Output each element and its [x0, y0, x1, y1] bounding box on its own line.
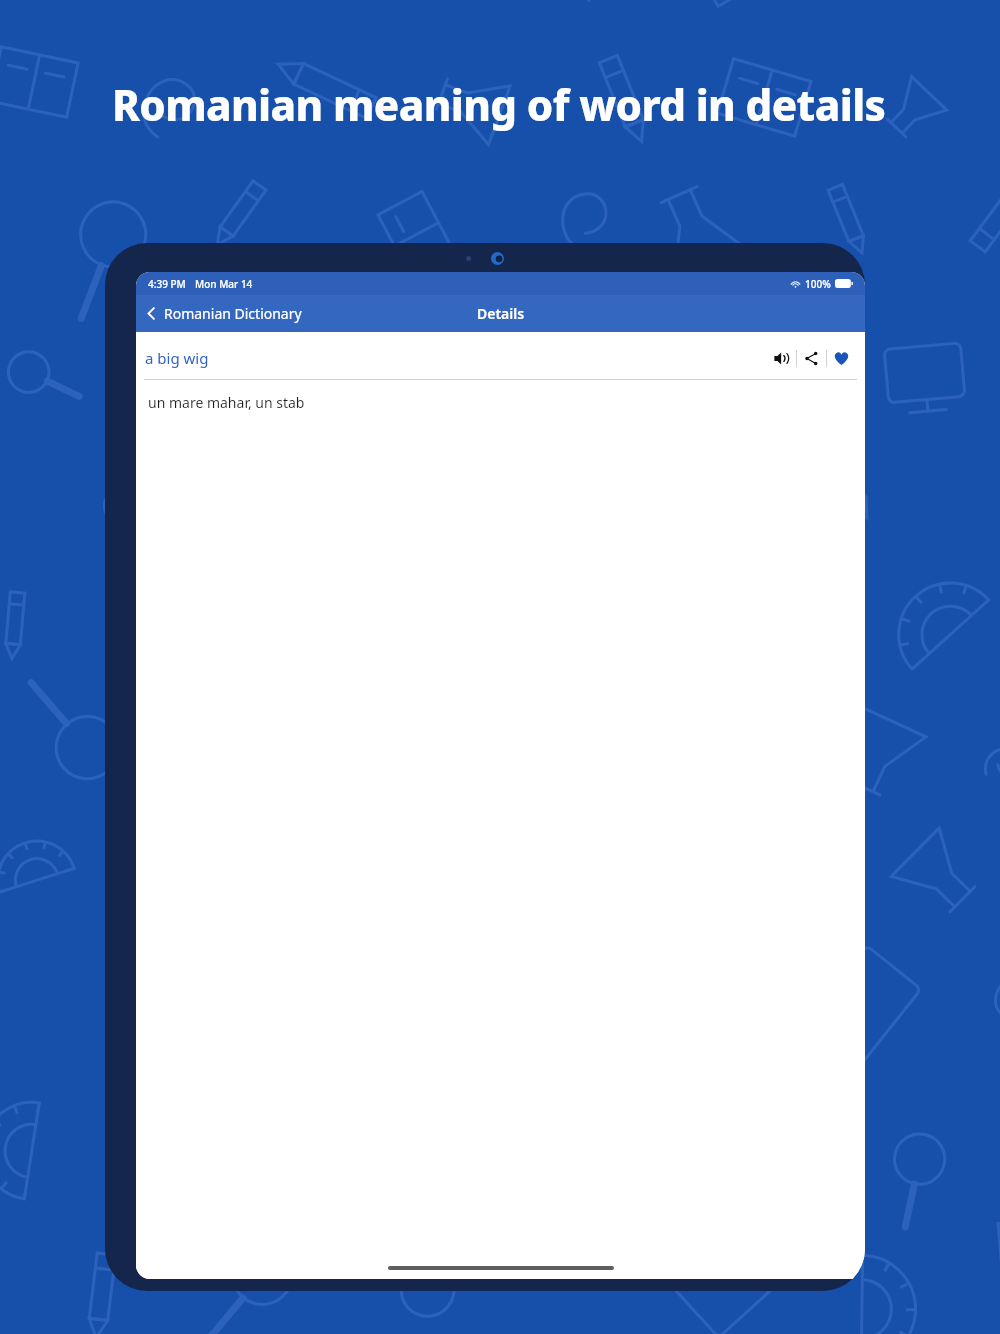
staticText: un mare mahar, un stab: [148, 393, 305, 412]
button[interactable]: Romanian Dictionary: [136, 299, 312, 328]
button[interactable]: Share: [797, 347, 826, 370]
staticText: 100%: [805, 277, 831, 291]
staticText: Romanian Dictionary: [164, 304, 302, 323]
button[interactable]: a big wig: [145, 344, 209, 372]
staticText: Details: [477, 304, 525, 323]
staticText: Mon Mar 14: [195, 277, 253, 291]
button[interactable]: Favorite: [827, 346, 856, 371]
button[interactable]: Pronounce: [767, 346, 796, 371]
staticText: 4:39 PM: [148, 277, 186, 291]
staticText: Romanian meaning of word in details: [112, 76, 1000, 133]
